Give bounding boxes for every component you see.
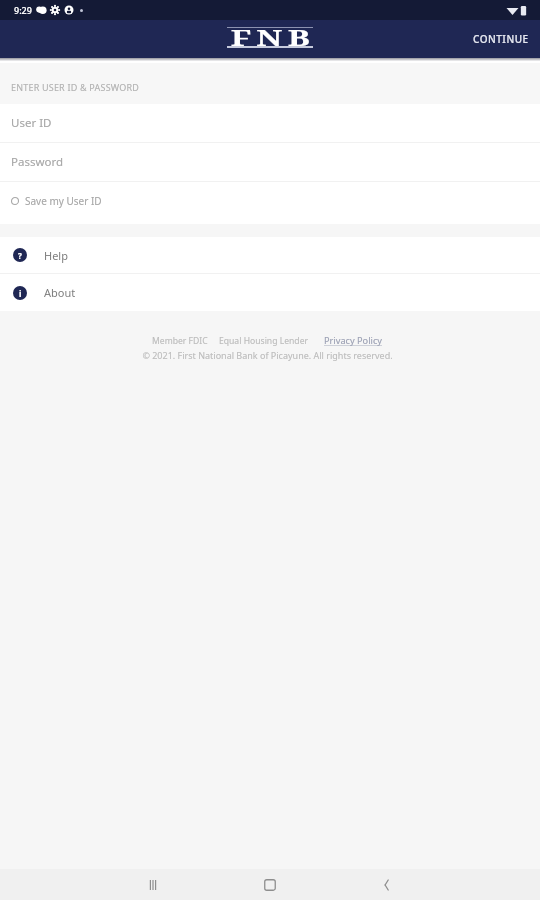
- staticText: CONTINUE: [473, 32, 529, 46]
- button[interactable]: Back: [367, 869, 407, 900]
- staticText: 9:29: [14, 4, 32, 16]
- staticText: ENTER USER ID & PASSWORD: [11, 81, 140, 93]
- button[interactable]: FNB: [226, 20, 314, 58]
- staticText: Password: [11, 154, 64, 170]
- button[interactable]: ?: [0, 237, 540, 273]
- staticText: About: [44, 285, 76, 300]
- button[interactable]: Home: [250, 869, 290, 900]
- button[interactable]: Privacy Policy: [324, 334, 382, 347]
- staticText: F: [231, 22, 252, 52]
- staticText: Privacy Policy: [324, 334, 382, 347]
- button[interactable]: i: [0, 274, 540, 311]
- button[interactable]: Recent apps: [133, 869, 173, 900]
- button[interactable]: CONTINUE: [459, 23, 540, 55]
- staticText: Help: [44, 248, 68, 263]
- staticText: Member FDIC: [152, 335, 208, 347]
- staticText: Save my User ID: [25, 194, 102, 208]
- staticText: N: [256, 22, 283, 52]
- staticText: Equal Housing Lender: [219, 335, 309, 347]
- staticText: i: [19, 288, 22, 299]
- button[interactable]: User ID: [0, 104, 540, 142]
- button[interactable]: Password: [0, 143, 540, 181]
- staticText: © 2021. First National Bank of Picayune.…: [142, 349, 393, 361]
- staticText: B: [288, 22, 310, 52]
- staticText: ?: [18, 250, 22, 261]
- button[interactable]: Save my User ID: [0, 182, 540, 224]
- staticText: User ID: [11, 115, 52, 131]
